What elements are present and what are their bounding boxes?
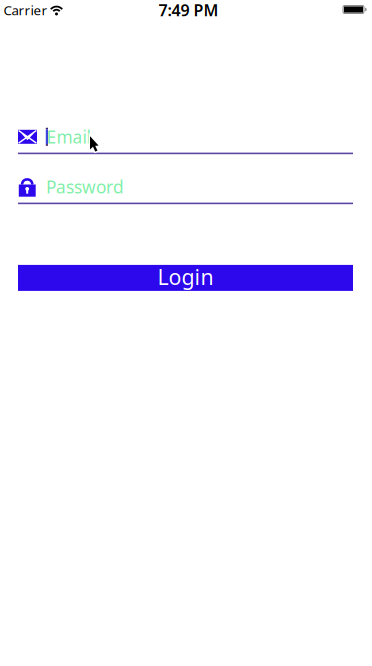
staticText: Login <box>157 262 213 291</box>
staticText: Carrier <box>3 1 47 19</box>
button[interactable]: Login <box>0 265 372 291</box>
button[interactable]: Password <box>0 175 372 204</box>
staticText: Password <box>46 175 124 198</box>
staticText: Email <box>47 125 91 148</box>
staticText: 7:49 PM <box>158 0 218 21</box>
button[interactable]: Email <box>0 125 372 154</box>
